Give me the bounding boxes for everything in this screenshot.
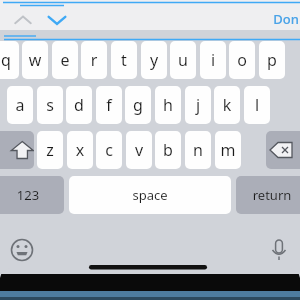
button[interactable]: z	[37, 131, 63, 169]
staticText: w	[22, 49, 48, 71]
button[interactable]: g	[125, 86, 151, 124]
button[interactable]: Backspace	[266, 131, 300, 169]
button[interactable]: e	[52, 41, 78, 79]
button[interactable]: m	[215, 131, 241, 169]
button[interactable]: t	[111, 41, 137, 79]
button[interactable]: Shift	[0, 131, 34, 169]
staticText: v	[126, 139, 152, 161]
button[interactable]: s	[37, 86, 63, 124]
button[interactable]: h	[155, 86, 181, 124]
button[interactable]: p	[259, 41, 285, 79]
staticText: n	[185, 139, 211, 161]
button[interactable]: q	[0, 41, 19, 79]
button[interactable]: Dictation	[266, 236, 292, 264]
button[interactable]: f	[96, 86, 122, 124]
staticText: u	[170, 49, 196, 71]
button[interactable]: u	[170, 41, 196, 79]
staticText: l	[244, 94, 270, 116]
staticText: y	[141, 49, 167, 71]
staticText: m	[215, 139, 241, 161]
staticText: space	[69, 186, 231, 204]
button[interactable]: w	[22, 41, 48, 79]
staticText: q	[0, 49, 19, 71]
staticText: c	[96, 139, 122, 161]
button[interactable]: v	[126, 131, 152, 169]
button[interactable]: i	[200, 41, 226, 79]
staticText: 123	[0, 186, 64, 204]
staticText: g	[125, 94, 151, 116]
button[interactable]: b	[155, 131, 181, 169]
staticText: r	[81, 49, 107, 71]
staticText: h	[155, 94, 181, 116]
button[interactable]: y	[141, 41, 167, 79]
staticText: f	[96, 94, 122, 116]
button[interactable]: k	[214, 86, 240, 124]
staticText: d	[66, 94, 92, 116]
button[interactable]: o	[229, 41, 255, 79]
button[interactable]: space	[69, 176, 231, 214]
staticText: b	[155, 139, 181, 161]
button[interactable]: d	[66, 86, 92, 124]
button[interactable]: n	[185, 131, 211, 169]
button[interactable]: Emoji	[8, 236, 36, 264]
button[interactable]: a	[7, 86, 33, 124]
staticText: s	[37, 94, 63, 116]
button[interactable]: 123	[0, 176, 64, 214]
staticText: i	[200, 49, 226, 71]
staticText: z	[37, 139, 63, 161]
button[interactable]: Next field	[44, 10, 70, 30]
staticText: a	[7, 94, 33, 116]
staticText: x	[67, 139, 93, 161]
staticText: o	[229, 49, 255, 71]
staticText: t	[111, 49, 137, 71]
staticText: return	[236, 186, 300, 204]
staticText: j	[185, 94, 211, 116]
staticText: e	[52, 49, 78, 71]
staticText: Done	[272, 10, 300, 30]
button[interactable]: j	[185, 86, 211, 124]
button[interactable]: Done	[272, 10, 300, 30]
button[interactable]: return	[236, 176, 300, 214]
button[interactable]: r	[81, 41, 107, 79]
button[interactable]: x	[67, 131, 93, 169]
staticText: k	[214, 94, 240, 116]
staticText: p	[259, 49, 285, 71]
button[interactable]: l	[244, 86, 270, 124]
button[interactable]: c	[96, 131, 122, 169]
button[interactable]: Previous field	[10, 10, 36, 30]
